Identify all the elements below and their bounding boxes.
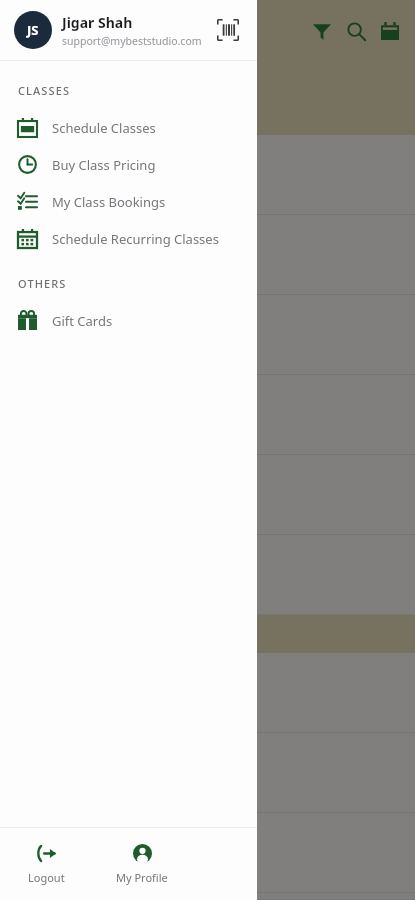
button[interactable] xyxy=(0,135,415,215)
button[interactable] xyxy=(0,295,415,375)
button[interactable]: Search xyxy=(339,14,373,48)
staticText: support@mybeststudio.com xyxy=(62,34,202,48)
button[interactable] xyxy=(0,215,415,295)
button[interactable]: My Profile xyxy=(92,828,192,900)
staticText: My Profile xyxy=(116,870,168,885)
button[interactable]: Schedule Recurring Classes xyxy=(0,220,257,257)
button[interactable] xyxy=(0,733,415,813)
button[interactable] xyxy=(0,813,415,893)
staticText: Schedule Recurring Classes xyxy=(52,230,219,248)
staticText: Jigar Shah xyxy=(62,13,133,32)
button[interactable]: Filter xyxy=(305,14,339,48)
staticText: Schedule Classes xyxy=(52,119,156,137)
staticText: My Class Bookings xyxy=(52,193,166,211)
button[interactable] xyxy=(0,375,415,455)
button[interactable]: My Class Bookings xyxy=(0,183,257,220)
button[interactable]: Logout xyxy=(0,828,92,900)
button[interactable]: Schedule Classes xyxy=(0,109,257,146)
button[interactable]: Gift Cards xyxy=(0,302,257,339)
button[interactable] xyxy=(0,455,415,535)
staticText: Buy Class Pricing xyxy=(52,156,156,174)
button[interactable] xyxy=(0,893,415,900)
button[interactable]: Buy Class Pricing xyxy=(0,146,257,183)
staticText: Gift Cards xyxy=(52,312,113,330)
staticText: Logout xyxy=(28,870,65,885)
staticText: JS xyxy=(27,21,39,39)
button[interactable] xyxy=(0,653,415,733)
button[interactable]: Calendar xyxy=(373,14,407,48)
button[interactable]: Scan barcode xyxy=(213,15,243,45)
button[interactable] xyxy=(0,535,415,615)
button[interactable]: JS xyxy=(0,0,257,60)
staticText: CLASSES xyxy=(18,83,71,98)
staticText: OTHERS xyxy=(18,276,67,291)
